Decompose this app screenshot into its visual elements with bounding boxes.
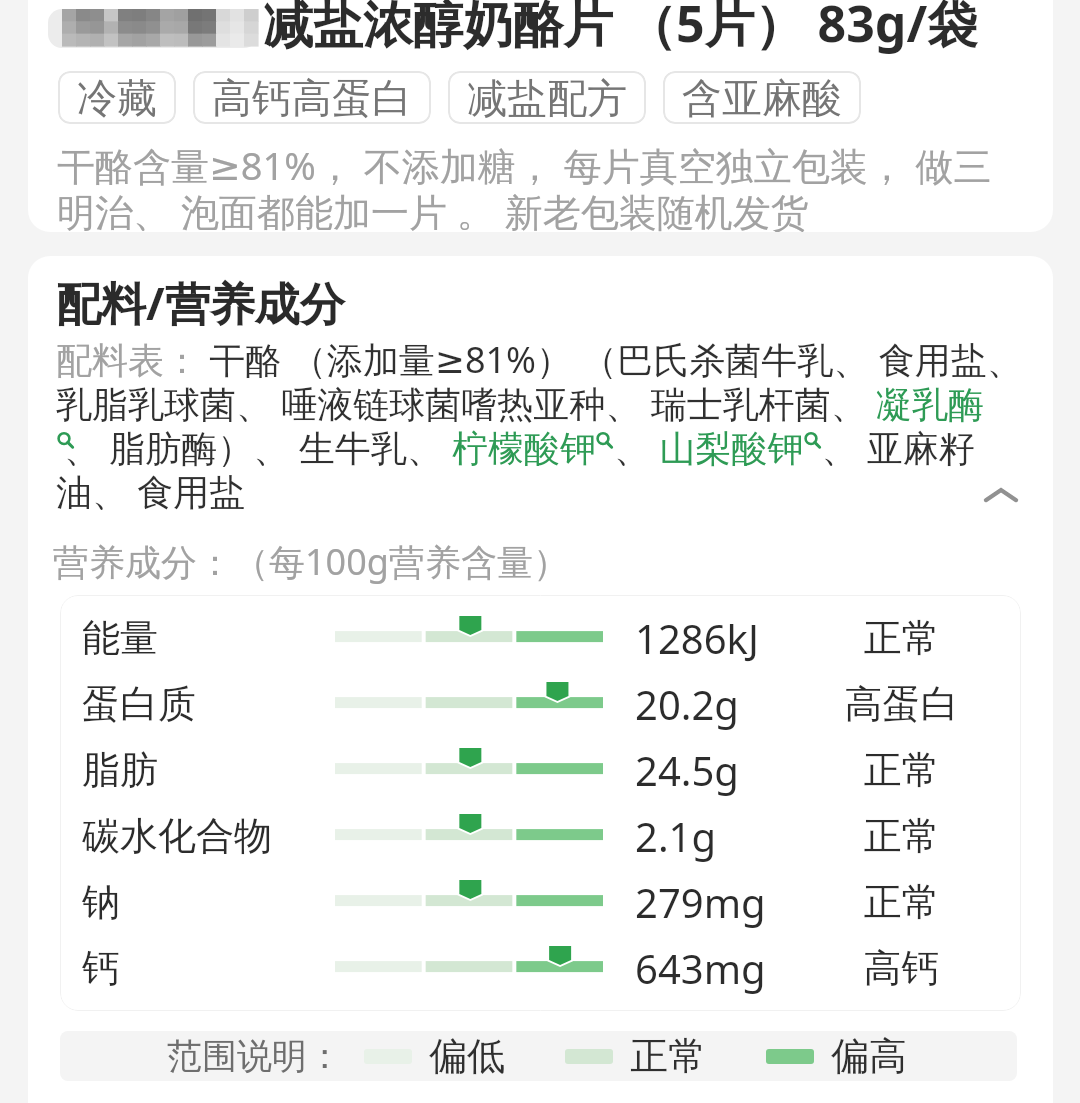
staticText: 蛋白质	[82, 680, 335, 728]
staticText: 乳脂乳球菌、 唾液链球菌嗜热亚种、 瑞士乳杆菌、 凝乳酶	[56, 379, 985, 423]
staticText: 干酪含量≥81%， 不添加糖， 每片真空独立包装， 做三明治、 泡面都能加一片 …	[57, 139, 1002, 232]
button[interactable]: 含亚麻酸	[663, 71, 861, 124]
staticText: 24.5g	[635, 743, 830, 797]
staticText: 高蛋白	[830, 680, 973, 728]
staticText: 279mg	[635, 875, 830, 929]
staticText: 正常	[830, 812, 973, 860]
staticText: 偏低	[429, 1032, 505, 1080]
staticText: 正常	[630, 1032, 706, 1080]
staticText: 643mg	[635, 941, 830, 995]
staticText: 配料/营养成分	[56, 272, 345, 333]
staticText: 高钙	[830, 944, 973, 992]
staticText: 1286kJ	[635, 611, 830, 665]
button[interactable]: 收起	[973, 466, 1029, 522]
staticText: 20.2g	[635, 677, 830, 731]
button[interactable]: 高钙高蛋白	[193, 71, 431, 124]
staticText: 配料表： 干酪 （添加量≥81%） （巴氏杀菌牛乳、 食用盐、	[56, 335, 1023, 379]
staticText: 偏高	[831, 1032, 907, 1080]
staticText: 正常	[830, 746, 973, 794]
staticText: 减盐配方	[467, 73, 627, 123]
staticText: 、 脂肪酶）、 生牛乳、 柠檬酸钾 、 山梨酸钾 、 亚麻籽	[64, 423, 975, 467]
staticText: 脂肪	[82, 746, 335, 794]
staticText: 高钙高蛋白	[212, 73, 412, 123]
staticText: 冷藏	[77, 73, 157, 123]
staticText: 减盐浓醇奶酪片 （5片） 83g/袋	[263, 0, 978, 57]
staticText: 钙	[82, 944, 335, 992]
staticText: 范围说明：	[167, 1034, 342, 1078]
staticText: 正常	[830, 614, 973, 662]
staticText: 碳水化合物	[82, 812, 335, 860]
staticText: 正常	[830, 878, 973, 926]
button[interactable]: 减盐配方	[448, 71, 646, 124]
staticText: 2.1g	[635, 809, 830, 863]
staticText: 油、 食用盐	[56, 467, 246, 511]
staticText: 含亚麻酸	[682, 73, 842, 123]
staticText: 营养成分：（每100g营养含量）	[53, 537, 569, 586]
button[interactable]: 冷藏	[58, 71, 176, 124]
staticText: 钠	[82, 878, 335, 926]
staticText: 能量	[82, 614, 335, 662]
